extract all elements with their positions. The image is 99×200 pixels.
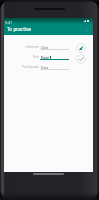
staticText: Date	[41, 45, 49, 50]
staticText: To practise	[7, 26, 32, 32]
button[interactable]: Send	[76, 43, 86, 53]
button[interactable]: Date	[40, 64, 69, 70]
staticText: Date	[41, 65, 49, 70]
button[interactable]: Confirm	[76, 54, 86, 64]
staticText: First	[0, 55, 39, 59]
button[interactable]: Date	[40, 44, 69, 50]
staticText: Date	[41, 55, 50, 60]
staticText: 5:41	[5, 20, 13, 25]
staticText: reference	[0, 45, 39, 49]
button[interactable]: Date	[40, 54, 69, 60]
button[interactable]: More options	[81, 24, 92, 35]
staticText: Participants	[0, 65, 39, 69]
